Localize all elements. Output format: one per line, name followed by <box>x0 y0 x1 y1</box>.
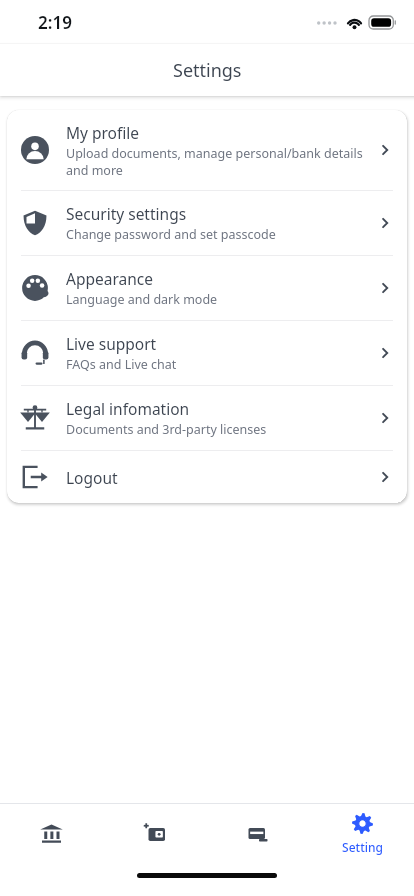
button[interactable]: Setting <box>310 804 414 862</box>
button[interactable]: Security settings <box>7 191 407 255</box>
button[interactable]: Live support <box>7 321 407 385</box>
staticText: Logout <box>66 467 118 488</box>
staticText: 2:19 <box>38 11 72 34</box>
staticText: Upload documents, manage personal/bank d… <box>66 145 367 178</box>
button[interactable]: Bank <box>0 804 103 862</box>
staticText: Security settings <box>66 203 187 224</box>
button[interactable]: Add card <box>103 804 206 862</box>
button[interactable]: Legal infomation <box>7 386 407 450</box>
staticText: Documents and 3rd-party licenses <box>66 421 267 438</box>
staticText: Legal infomation <box>66 398 190 419</box>
staticText: Language and dark mode <box>66 291 218 308</box>
staticText: Change password and set passcode <box>66 226 276 243</box>
staticText: FAQs and Live chat <box>66 356 177 373</box>
button[interactable]: My profile <box>7 110 407 190</box>
staticText: Setting <box>342 839 383 855</box>
button[interactable]: Cards <box>206 804 310 862</box>
button[interactable]: Appearance <box>7 256 407 320</box>
staticText: Live support <box>66 333 157 354</box>
staticText: Appearance <box>66 268 153 289</box>
staticText: My profile <box>66 122 140 143</box>
button[interactable]: Logout <box>7 451 407 503</box>
staticText: Settings <box>173 58 242 83</box>
